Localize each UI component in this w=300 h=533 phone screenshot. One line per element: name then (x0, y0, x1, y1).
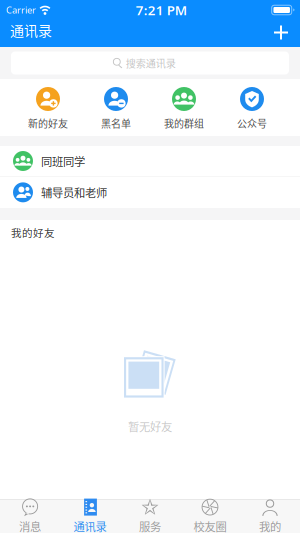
button[interactable]: 我的 (240, 493, 300, 533)
button[interactable]: 同班同学 (0, 146, 300, 176)
button[interactable]: 添加 (264, 20, 300, 47)
staticText: 新的好友 (28, 116, 68, 130)
staticText: 搜索通讯录 (126, 56, 176, 70)
staticText: 服务 (139, 518, 161, 533)
staticText: 我的好友 (11, 225, 55, 240)
staticText: 通讯录 (73, 518, 106, 533)
staticText: 黑名单 (101, 116, 131, 130)
button[interactable]: 新的好友 (14, 79, 82, 136)
staticText: 7:21 PM (136, 1, 187, 19)
button[interactable]: 辅导员和老师 (0, 177, 300, 208)
button[interactable]: 搜索通讯录 (11, 51, 289, 74)
button[interactable]: 服务 (120, 493, 180, 533)
staticText: 公众号 (237, 116, 267, 130)
staticText: 辅导员和老师 (41, 184, 107, 200)
staticText: 暂无好友 (128, 418, 172, 434)
staticText: 校友圈 (193, 518, 226, 533)
staticText: 消息 (19, 518, 41, 533)
button[interactable]: 黑名单 (82, 79, 150, 136)
button[interactable]: 通讯录 (60, 493, 120, 533)
staticText: 我的 (259, 518, 281, 533)
button[interactable]: 我的群组 (150, 79, 218, 136)
button[interactable]: 消息 (0, 493, 60, 533)
staticText: 我的群组 (164, 116, 204, 130)
button[interactable]: 公众号 (218, 79, 286, 136)
button[interactable]: 校友圈 (180, 493, 240, 533)
staticText: 同班同学 (41, 153, 85, 169)
staticText: Carrier (6, 4, 36, 16)
staticText: 通讯录 (10, 20, 52, 40)
